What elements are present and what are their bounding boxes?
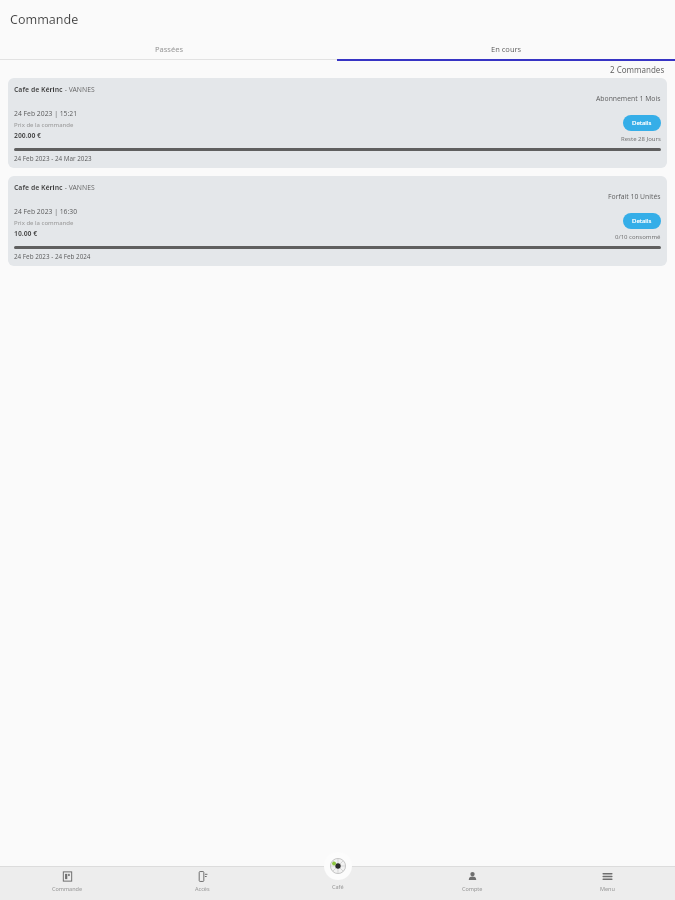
staticText: Passées	[155, 44, 183, 54]
staticText: Café	[332, 883, 344, 890]
staticText: - VANNES	[63, 183, 95, 192]
button[interactable]: Accès	[135, 866, 270, 900]
staticText: Abonnement 1 Mois	[596, 94, 661, 103]
staticText: 24 Feb 2023 | 16:30	[14, 207, 78, 216]
staticText: Details	[632, 217, 652, 225]
button[interactable]: Menu	[540, 866, 675, 900]
staticText: Reste 28 Jours	[621, 135, 661, 143]
staticText: Prix de la commande	[14, 219, 74, 227]
button[interactable]: Cafe de Kérinc	[8, 78, 667, 168]
staticText: Cafe de Kérinc	[14, 85, 63, 94]
staticText: Prix de la commande	[14, 121, 74, 129]
staticText: 24 Feb 2023 | 15:21	[14, 109, 78, 118]
button[interactable]: Café	[324, 852, 352, 880]
staticText: Cafe de Kérinc	[14, 183, 63, 192]
staticText: Accès	[195, 885, 210, 892]
staticText: 24 Feb 2023 - 24 Mar 2023	[14, 154, 92, 163]
button[interactable]: En cours	[337, 38, 675, 59]
staticText: 24 Feb 2023 - 24 Feb 2024	[14, 252, 91, 261]
button[interactable]: Compte	[405, 866, 540, 900]
staticText: Details	[632, 119, 652, 127]
button[interactable]: Details	[623, 115, 661, 131]
staticText: 2 Commandes	[610, 64, 665, 75]
staticText: Compte	[462, 885, 483, 892]
staticText: 200.00 €	[14, 131, 42, 140]
button[interactable]: Cafe de Kérinc	[8, 176, 667, 266]
staticText: 0/10 consommé	[615, 233, 661, 241]
staticText: Commande	[10, 11, 79, 28]
staticText: Commande	[52, 885, 83, 892]
staticText: - VANNES	[63, 85, 95, 94]
button[interactable]: Commande	[0, 866, 135, 900]
button[interactable]: Details	[623, 213, 661, 229]
staticText: Forfait 10 Unités	[608, 192, 661, 201]
staticText: 10.00 €	[14, 229, 38, 238]
button[interactable]: Passées	[0, 38, 337, 59]
staticText: En cours	[491, 44, 522, 54]
staticText: Menu	[600, 885, 615, 892]
